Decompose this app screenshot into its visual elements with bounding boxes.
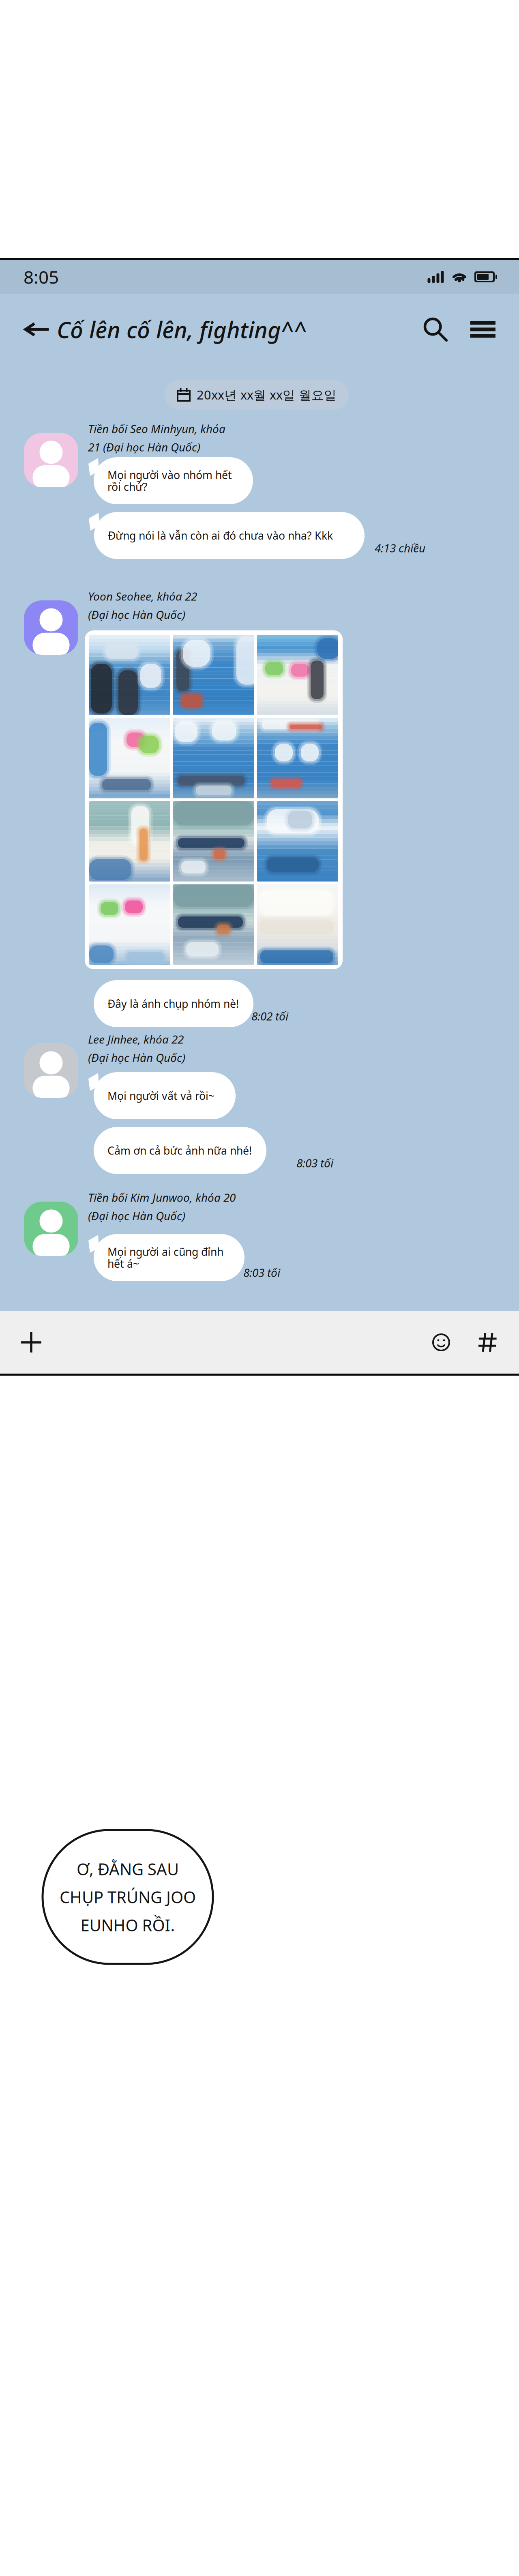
staticText: Mọi người vất vả rồi~ (107, 1089, 214, 1103)
staticText: Ơ, ĐẰNG SAU (77, 1858, 179, 1880)
staticText: 8:02 tối (251, 1008, 288, 1024)
staticText: 20xx년 xx월 xx일 월요일 (197, 386, 337, 403)
staticText: Tiền bối Seo Minhyun, khóa (88, 421, 225, 436)
button[interactable]: Cảm ơn cả bức ảnh nữa nhé! (94, 1127, 266, 1174)
button[interactable]: Search (423, 317, 448, 342)
staticText: CHỤP TRÚNG JOO (60, 1886, 196, 1908)
staticText: Cố lên cố lên, fighting^^ (57, 314, 307, 344)
staticText: (Đại học Hàn Quốc) (88, 1208, 185, 1223)
button[interactable]: Cố lên cố lên, fighting^^ (57, 314, 307, 344)
staticText: Đừng nói là vẫn còn ai đó chưa vào nha? … (108, 528, 333, 543)
staticText: 4:13 chiều (375, 540, 425, 555)
staticText: Mọi người ai cũng đỉnh hết á~ (107, 1244, 223, 1271)
button[interactable]: Emoji (432, 1333, 450, 1351)
staticText: 8:03 tối (296, 1155, 333, 1170)
button[interactable]: Menu (470, 321, 495, 338)
staticText: EUNHO RỒI. (80, 1914, 175, 1936)
staticText: 8:03 tối (243, 1265, 280, 1280)
staticText: Yoon Seohee, khóa 22 (88, 589, 197, 604)
staticText: Lee Jinhee, khóa 22 (88, 1032, 184, 1047)
staticText: (Đại học Hàn Quốc) (88, 1050, 185, 1065)
button[interactable]: Add attachment (21, 1332, 41, 1353)
button[interactable]: Mọi người ai cũng đỉnh hết á~ (94, 1234, 244, 1281)
button[interactable]: Hashtag (478, 1333, 497, 1352)
staticText: Tiền bối Kim Junwoo, khóa 20 (88, 1190, 236, 1205)
button[interactable]: Đây là ảnh chụp nhóm nè! (94, 980, 253, 1027)
staticText: Cảm ơn cả bức ảnh nữa nhé! (107, 1143, 252, 1158)
staticText: Đây là ảnh chụp nhóm nè! (107, 996, 239, 1011)
button[interactable]: Photo album (85, 630, 343, 969)
staticText: 8:05 (24, 265, 59, 289)
button[interactable]: Back (24, 312, 50, 347)
staticText: 21 (Đại học Hàn Quốc) (88, 439, 200, 455)
button[interactable]: Mọi người vào nhóm hết rồi chứ? (94, 457, 253, 504)
staticText: (Đại học Hàn Quốc) (88, 607, 185, 622)
button[interactable]: Mọi người vất vả rồi~ (94, 1072, 236, 1119)
button[interactable]: Đừng nói là vẫn còn ai đó chưa vào nha? … (94, 512, 365, 559)
staticText: Mọi người vào nhóm hết rồi chứ? (107, 468, 232, 494)
